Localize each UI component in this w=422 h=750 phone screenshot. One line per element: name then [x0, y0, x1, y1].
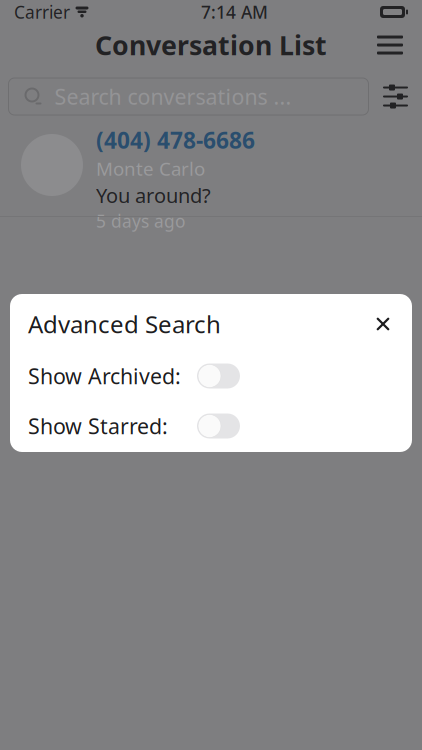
staticText: Carrier	[14, 0, 70, 23]
staticText: Show Archived:	[28, 362, 181, 390]
staticText: Conversation List	[95, 27, 327, 63]
staticText: 7:14 AM	[201, 0, 268, 23]
button[interactable]: (404) 478-6686	[0, 125, 422, 216]
button[interactable]: Menu	[368, 25, 412, 65]
button[interactable]: Show Starred:	[197, 413, 240, 438]
button[interactable]: Search conversations ...	[8, 78, 368, 115]
staticText: Advanced Search	[28, 308, 221, 340]
staticText: Monte Carlo	[96, 156, 205, 181]
button[interactable]: Show Archived:	[197, 363, 240, 388]
staticText: Show Starred:	[28, 412, 168, 440]
staticText: You around?	[96, 182, 211, 208]
staticText: 5 days ago	[96, 209, 185, 232]
staticText: Search conversations ...	[54, 82, 291, 111]
button[interactable]: Close	[366, 307, 400, 341]
button[interactable]: Filter	[376, 78, 414, 115]
staticText: (404) 478-6686	[96, 125, 255, 155]
